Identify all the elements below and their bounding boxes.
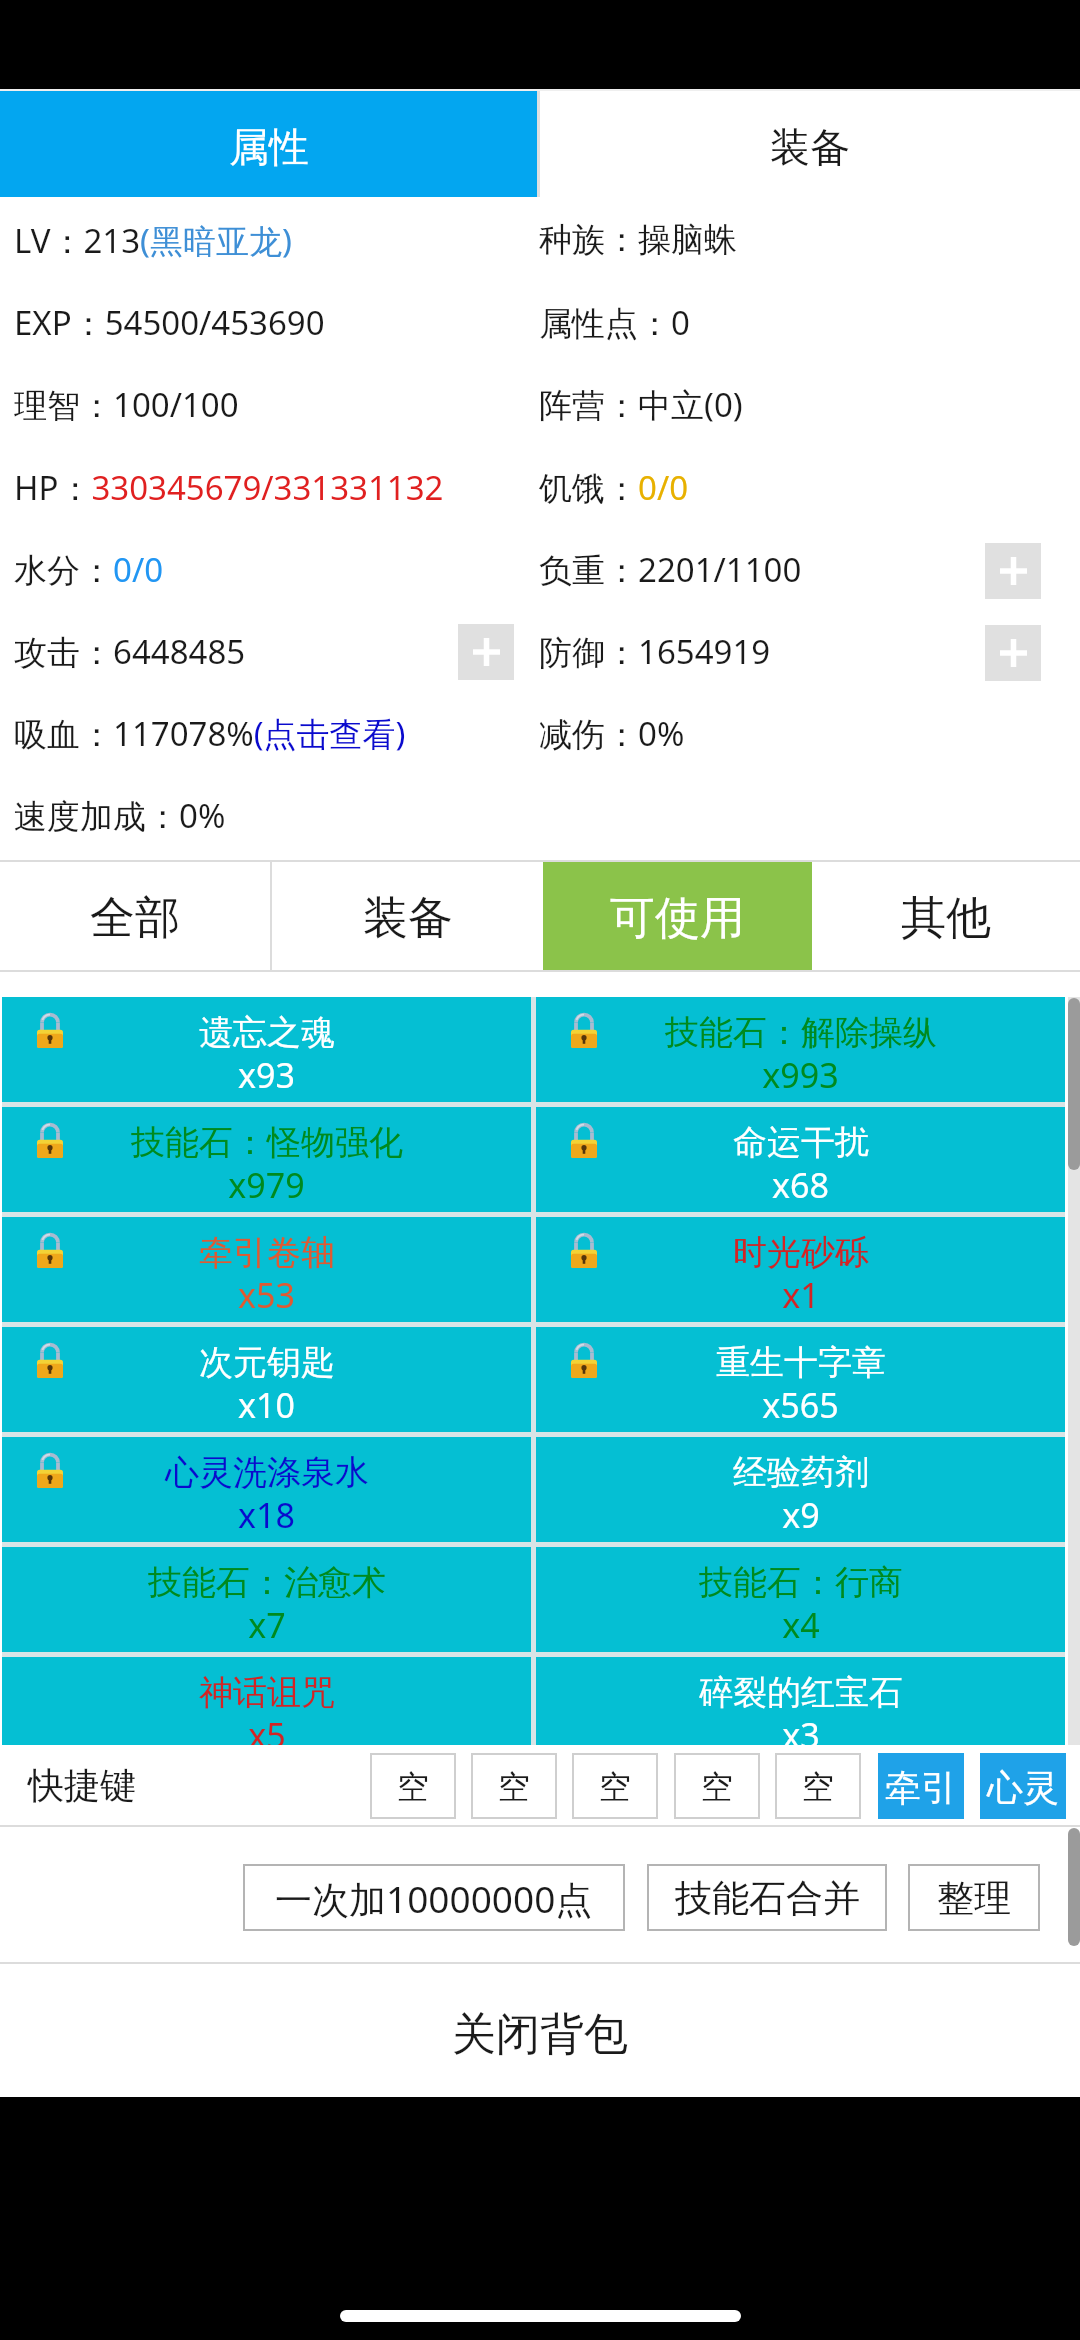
button[interactable]: Add point xyxy=(458,624,514,680)
button[interactable]: 空 xyxy=(370,1753,456,1819)
staticText: 可使用 xyxy=(610,890,745,947)
button[interactable]: 牵引卷轴 xyxy=(2,1217,531,1322)
staticText: 技能石：治愈术 xyxy=(148,1561,386,1604)
staticText: x9 xyxy=(782,1492,820,1538)
staticText: 遗忘之魂 xyxy=(199,1011,335,1054)
staticText: 减伤：0% xyxy=(539,711,685,756)
staticText: 心灵 xyxy=(987,1765,1059,1810)
button[interactable]: 空 xyxy=(775,1753,861,1819)
staticText: 技能石：行商 xyxy=(699,1561,903,1604)
staticText: 攻击：6448485 xyxy=(14,629,246,674)
staticText: LV：213(黑暗亚龙) xyxy=(14,218,292,263)
staticText: x4 xyxy=(782,1602,820,1648)
staticText: x1 xyxy=(782,1272,820,1318)
staticText: 全部 xyxy=(90,890,180,947)
staticText: 阵营：中立(0) xyxy=(539,382,743,427)
staticText: HP：330345679/331331132 xyxy=(14,465,444,510)
staticText: 空 xyxy=(802,1767,834,1807)
staticText: 经验药剂 xyxy=(733,1451,869,1494)
button[interactable]: 神话诅咒 xyxy=(2,1657,531,1745)
staticText: 理智：100/100 xyxy=(14,382,239,427)
staticText: 心灵洗涤泉水 xyxy=(165,1451,369,1494)
staticText: x18 xyxy=(238,1492,295,1538)
staticText: x5 xyxy=(248,1712,286,1758)
staticText: 空 xyxy=(397,1767,429,1807)
staticText: x565 xyxy=(762,1382,839,1428)
staticText: x53 xyxy=(238,1272,295,1318)
staticText: 重生十字章 xyxy=(716,1341,886,1384)
staticText: x68 xyxy=(772,1162,829,1208)
button[interactable]: 次元钥匙 xyxy=(2,1327,531,1432)
staticText: 其他 xyxy=(901,890,991,947)
button[interactable]: 其他 xyxy=(812,862,1080,970)
staticText: 牵引卷轴 xyxy=(199,1231,335,1274)
staticText: 命运干扰 xyxy=(733,1121,869,1164)
staticText: 吸血：117078%(点击查看) xyxy=(14,711,406,756)
button[interactable]: 碎裂的红宝石 xyxy=(536,1657,1065,1745)
staticText: x7 xyxy=(248,1602,286,1648)
button[interactable]: 遗忘之魂 xyxy=(2,997,531,1102)
button[interactable]: Add point xyxy=(985,625,1041,681)
button[interactable]: 装备 xyxy=(540,91,1080,197)
staticText: 技能石：解除操纵 xyxy=(665,1011,937,1054)
staticText: x10 xyxy=(238,1382,295,1428)
staticText: 装备 xyxy=(770,122,850,172)
staticText: 水分：0/0 xyxy=(14,547,164,592)
staticText: x3 xyxy=(782,1712,820,1758)
staticText: 属性 xyxy=(229,122,309,172)
staticText: 速度加成：0% xyxy=(14,793,226,838)
staticText: 属性点：0 xyxy=(539,300,690,345)
staticText: 关闭背包 xyxy=(452,2007,628,2062)
staticText: 饥饿：0/0 xyxy=(539,465,689,510)
button[interactable]: 一次加10000000点 xyxy=(243,1864,625,1931)
button[interactable]: 空 xyxy=(674,1753,760,1819)
staticText: x993 xyxy=(762,1052,839,1098)
staticText: 碎裂的红宝石 xyxy=(699,1671,903,1714)
button[interactable]: 技能石：治愈术 xyxy=(2,1547,531,1652)
button[interactable]: 经验药剂 xyxy=(536,1437,1065,1542)
staticText: 技能石：怪物强化 xyxy=(131,1121,403,1164)
button[interactable]: 时光砂砾 xyxy=(536,1217,1065,1322)
button[interactable]: 技能石：解除操纵 xyxy=(536,997,1065,1102)
staticText: 空 xyxy=(498,1767,530,1807)
staticText: x93 xyxy=(238,1052,295,1098)
button[interactable]: 属性 xyxy=(0,91,537,197)
button[interactable]: 关闭背包 xyxy=(0,1964,1080,2097)
staticText: 次元钥匙 xyxy=(199,1341,335,1384)
button[interactable]: 心灵洗涤泉水 xyxy=(2,1437,531,1542)
staticText: 快捷键 xyxy=(28,1763,136,1808)
staticText: 技能石合并 xyxy=(675,1875,860,1922)
staticText: EXP：54500/453690 xyxy=(14,300,325,345)
staticText: 时光砂砾 xyxy=(733,1231,869,1274)
button[interactable]: 装备 xyxy=(272,862,543,970)
staticText: x979 xyxy=(228,1162,305,1208)
button[interactable]: 牵引 xyxy=(878,1753,964,1819)
button[interactable]: 技能石合并 xyxy=(647,1864,887,1931)
staticText: 空 xyxy=(599,1767,631,1807)
button[interactable]: 技能石：行商 xyxy=(536,1547,1065,1652)
staticText: 防御：1654919 xyxy=(539,629,771,674)
staticText: 种族：操脑蛛 xyxy=(539,219,737,261)
button[interactable]: Add point xyxy=(985,543,1041,599)
staticText: 负重：2201/1100 xyxy=(539,547,802,592)
button[interactable]: 全部 xyxy=(0,862,270,970)
button[interactable]: 心灵 xyxy=(980,1753,1066,1819)
button[interactable]: 空 xyxy=(572,1753,658,1819)
button[interactable]: 技能石：怪物强化 xyxy=(2,1107,531,1212)
button[interactable]: 可使用 xyxy=(543,862,812,970)
staticText: 整理 xyxy=(937,1875,1011,1922)
staticText: 一次加10000000点 xyxy=(275,1873,593,1924)
staticText: 装备 xyxy=(363,890,453,947)
button[interactable]: 整理 xyxy=(908,1864,1040,1931)
staticText: 神话诅咒 xyxy=(199,1671,335,1714)
button[interactable]: 命运干扰 xyxy=(536,1107,1065,1212)
staticText: 牵引 xyxy=(885,1765,957,1810)
button[interactable]: 空 xyxy=(471,1753,557,1819)
staticText: 空 xyxy=(701,1767,733,1807)
button[interactable]: 重生十字章 xyxy=(536,1327,1065,1432)
